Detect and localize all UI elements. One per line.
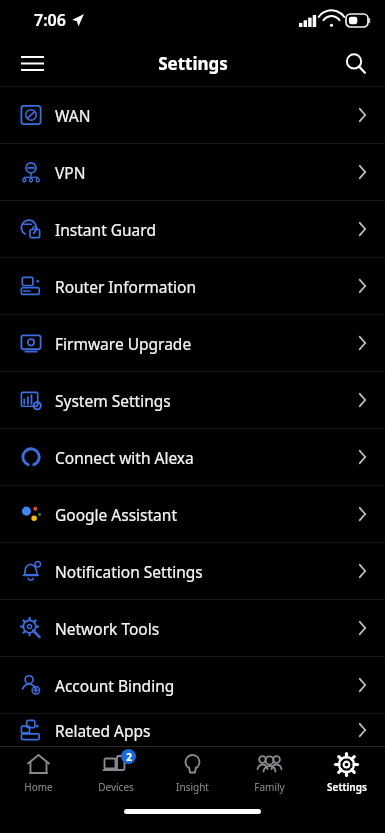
- button[interactable]: Instant Guard: [0, 201, 385, 257]
- button[interactable]: Router Information: [0, 258, 385, 314]
- button[interactable]: Menu: [10, 41, 54, 85]
- staticText: Devices: [98, 780, 134, 794]
- staticText: Network Tools: [55, 618, 160, 639]
- staticText: Firmware Upgrade: [55, 333, 192, 354]
- staticText: Family: [254, 780, 285, 794]
- staticText: Settings: [158, 52, 228, 75]
- button[interactable]: Settings: [308, 747, 385, 799]
- staticText: VPN: [55, 162, 86, 183]
- staticText: Instant Guard: [55, 219, 156, 240]
- button[interactable]: Notification Settings: [0, 543, 385, 599]
- staticText: Account Binding: [55, 675, 175, 696]
- button[interactable]: Family: [231, 747, 308, 799]
- staticText: Connect with Alexa: [55, 447, 194, 468]
- staticText: 2: [126, 750, 132, 764]
- button[interactable]: Connect with Alexa: [0, 429, 385, 485]
- button[interactable]: Related Apps: [0, 714, 385, 746]
- button[interactable]: Network Tools: [0, 600, 385, 656]
- button[interactable]: WAN: [0, 87, 385, 143]
- staticText: System Settings: [55, 390, 171, 411]
- button[interactable]: Insight: [154, 747, 231, 799]
- staticText: Related Apps: [55, 720, 151, 741]
- button[interactable]: VPN: [0, 144, 385, 200]
- staticText: Settings: [327, 780, 367, 794]
- staticText: 7:06: [34, 9, 66, 31]
- staticText: Notification Settings: [55, 561, 203, 582]
- button[interactable]: Search: [333, 41, 377, 85]
- button[interactable]: Account Binding: [0, 657, 385, 713]
- button[interactable]: Firmware Upgrade: [0, 315, 385, 371]
- staticText: Router Information: [55, 276, 197, 297]
- button[interactable]: System Settings: [0, 372, 385, 428]
- staticText: Home: [24, 780, 53, 794]
- staticText: Google Assistant: [55, 504, 177, 525]
- button[interactable]: 2: [77, 747, 154, 799]
- button[interactable]: Google Assistant: [0, 486, 385, 542]
- staticText: Insight: [176, 780, 209, 794]
- button[interactable]: Home: [0, 747, 77, 799]
- staticText: WAN: [55, 105, 91, 126]
